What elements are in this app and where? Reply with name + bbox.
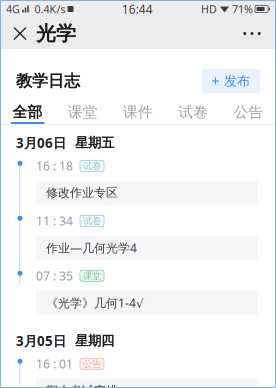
staticText: 发布	[224, 73, 250, 89]
staticText: 作业—几何光学4	[46, 240, 137, 256]
staticText: 4G	[6, 2, 20, 16]
staticText: 试卷	[83, 160, 101, 172]
button[interactable]: 公告	[221, 102, 276, 124]
staticText: 0.4K/s	[34, 2, 65, 16]
staticText: 星期五	[75, 135, 114, 151]
staticText: 课堂	[68, 103, 98, 121]
staticText: 公告	[83, 358, 101, 370]
staticText: 16 : 18	[36, 158, 73, 174]
staticText: 课件	[123, 103, 153, 121]
button[interactable]: 课堂	[55, 102, 110, 124]
button[interactable]: Close	[6, 18, 34, 49]
staticText: 教学日志	[16, 71, 80, 91]
staticText: 3月06日	[16, 134, 66, 152]
button[interactable]: 作业—几何光学4	[36, 236, 258, 260]
staticText: 试卷	[83, 215, 101, 227]
button[interactable]: 全部	[0, 102, 55, 124]
staticText: 全部	[13, 103, 43, 121]
staticText: 试卷	[178, 103, 208, 121]
button[interactable]: 《光学》几何1-4√	[36, 291, 258, 315]
button[interactable]: 修改作业专区	[36, 181, 258, 205]
staticText: 11 : 34	[36, 213, 73, 229]
staticText: 3月05日	[16, 332, 66, 350]
button[interactable]: 发布	[202, 69, 260, 93]
button[interactable]: More options	[234, 18, 270, 49]
staticText: 《光学》几何1-4√	[46, 295, 144, 311]
staticText: 修改作业专区	[46, 185, 118, 200]
staticText: 07 : 35	[36, 268, 73, 284]
staticText: 光学	[36, 21, 76, 46]
button[interactable]: 试卷	[166, 102, 221, 124]
staticText: 期末考试安排	[46, 383, 118, 388]
staticText: 课堂	[83, 270, 101, 282]
staticText: 公告	[233, 103, 263, 121]
staticText: 16 : 01	[36, 356, 73, 372]
staticText: 星期四	[75, 333, 114, 349]
staticText: HD	[201, 2, 217, 16]
staticText: 16:44	[122, 1, 153, 17]
staticText: 71%	[232, 2, 253, 16]
button[interactable]: 课件	[110, 102, 166, 124]
button[interactable]: 期末考试安排	[36, 379, 258, 388]
